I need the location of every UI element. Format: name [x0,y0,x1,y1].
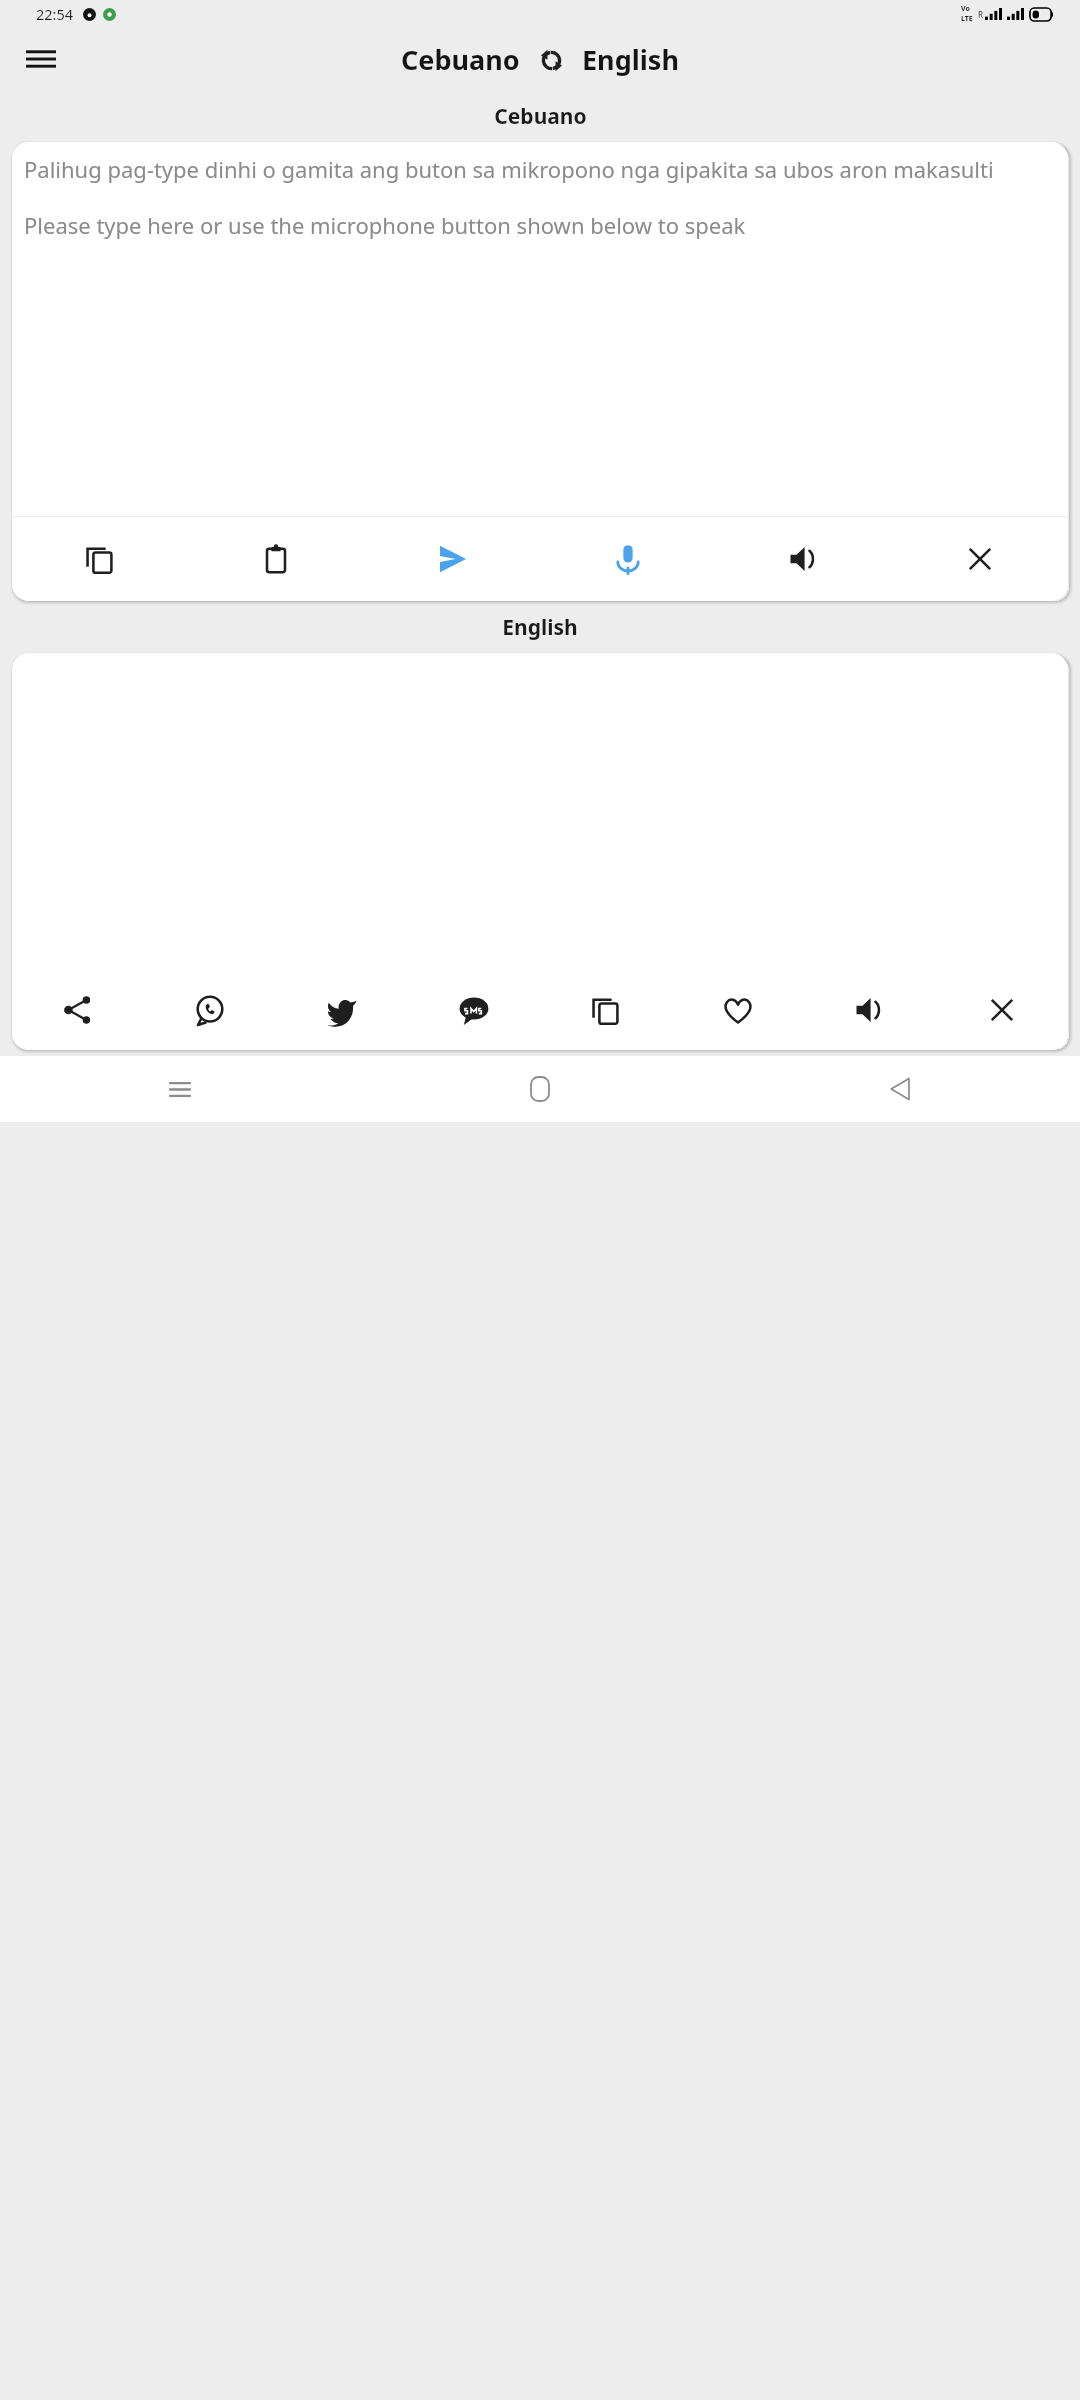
button[interactable]: SMS [408,970,540,1050]
button[interactable]: Copy [12,517,188,601]
staticText: Vo [961,4,970,14]
button[interactable]: Back [720,1056,1080,1122]
staticText: English [582,41,679,78]
button[interactable]: Share [12,970,144,1050]
staticText: Cebuano [401,41,520,78]
button[interactable]: Menu [14,32,68,86]
staticText: Palihug pag-type dinhi o gamita ang buto… [24,154,994,241]
staticText: Cebuano [494,102,587,131]
button[interactable]: Speak [540,517,716,601]
button[interactable]: Home [360,1056,720,1122]
button[interactable]: Cebuano [401,41,520,78]
button[interactable]: WhatsApp [144,970,276,1050]
button[interactable]: Paste [188,517,364,601]
button[interactable]: Favorite [672,970,804,1050]
button[interactable]: English [582,41,679,78]
button[interactable]: Twitter [276,970,408,1050]
staticText: R [978,9,983,20]
button[interactable]: Palihug pag-type dinhi o gamita ang buto… [12,142,1068,516]
button[interactable]: Listen [804,970,936,1050]
staticText: 22:54 [36,4,74,24]
button[interactable]: Copy [540,970,672,1050]
button[interactable]: Swap languages [533,42,569,78]
staticText: English [502,613,578,642]
button[interactable]: Listen [716,517,892,601]
button[interactable]: Clear [892,517,1068,601]
button[interactable]: Clear [936,970,1068,1050]
button[interactable]: Recents [0,1056,360,1122]
button[interactable]: Translate [364,517,540,601]
staticText: LTE [961,14,973,24]
